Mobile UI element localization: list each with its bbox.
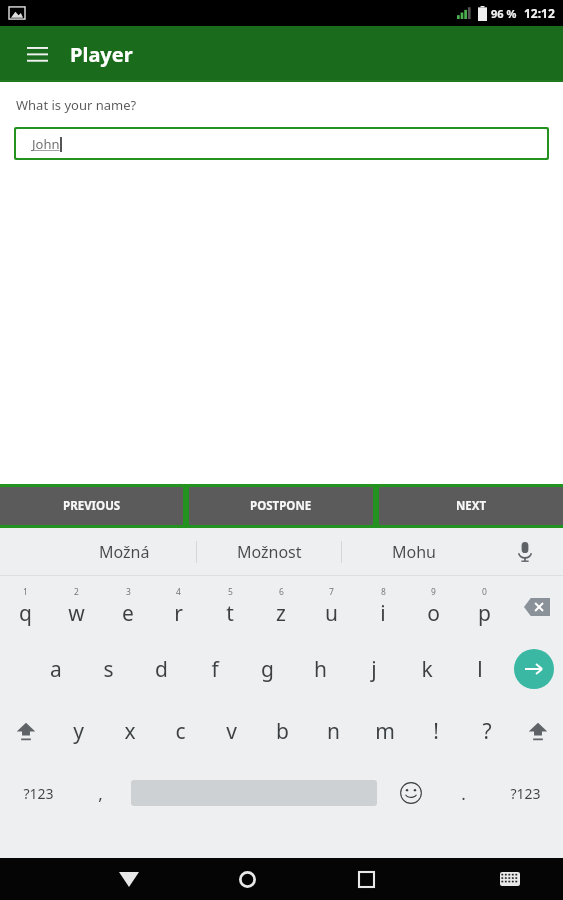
- staticText: p: [478, 599, 491, 628]
- staticText: o: [427, 599, 440, 628]
- button[interactable]: Voice input: [486, 528, 563, 576]
- button[interactable]: Možná: [52, 528, 196, 576]
- staticText: NEXT: [456, 498, 487, 514]
- staticText: Mohu: [392, 541, 436, 563]
- button[interactable]: 7: [306, 576, 357, 638]
- button[interactable]: 5: [204, 576, 255, 638]
- button[interactable]: ?: [461, 700, 512, 762]
- button[interactable]: 6: [255, 576, 306, 638]
- button[interactable]: Backspace: [510, 576, 563, 638]
- staticText: q: [19, 599, 32, 628]
- button[interactable]: Space: [124, 762, 383, 824]
- button[interactable]: Next field: [506, 638, 562, 700]
- staticText: y: [73, 717, 84, 746]
- button[interactable]: Mohu: [342, 528, 486, 576]
- staticText: PREVIOUS: [63, 498, 121, 514]
- staticText: 7: [329, 586, 334, 598]
- staticText: What is your name?: [16, 96, 137, 114]
- button[interactable]: 8: [357, 576, 408, 638]
- staticText: !: [433, 717, 439, 746]
- staticText: Možnost: [237, 541, 302, 563]
- button[interactable]: 2: [51, 576, 102, 638]
- staticText: 96 %: [491, 6, 517, 21]
- button[interactable]: 9: [408, 576, 459, 638]
- button[interactable]: Home: [209, 858, 286, 900]
- staticText: d: [155, 655, 168, 684]
- button[interactable]: x: [104, 700, 155, 762]
- button[interactable]: ,: [76, 762, 124, 824]
- button[interactable]: ?123: [487, 762, 563, 824]
- staticText: 12:12: [524, 5, 555, 21]
- button[interactable]: h: [294, 638, 347, 700]
- staticText: 5: [228, 586, 233, 598]
- button[interactable]: j: [347, 638, 400, 700]
- button[interactable]: John: [16, 129, 547, 158]
- staticText: g: [261, 655, 274, 684]
- staticText: b: [276, 717, 289, 746]
- button[interactable]: 4: [153, 576, 204, 638]
- staticText: 0: [482, 586, 487, 598]
- button[interactable]: 1: [0, 576, 51, 638]
- button[interactable]: k: [400, 638, 453, 700]
- button[interactable]: g: [241, 638, 294, 700]
- button[interactable]: c: [155, 700, 206, 762]
- staticText: j: [371, 655, 377, 684]
- staticText: 1: [23, 586, 28, 598]
- button[interactable]: Switch keyboard: [471, 858, 548, 900]
- staticText: x: [124, 717, 136, 746]
- staticText: v: [226, 717, 237, 746]
- staticText: l: [477, 655, 483, 684]
- staticText: h: [314, 655, 327, 684]
- button[interactable]: Recent apps: [328, 858, 405, 900]
- button[interactable]: s: [82, 638, 135, 700]
- staticText: John: [32, 135, 60, 153]
- staticText: 6: [279, 586, 284, 598]
- button[interactable]: Shift: [512, 700, 563, 762]
- button[interactable]: Možnost: [197, 528, 341, 576]
- button[interactable]: 3: [102, 576, 153, 638]
- button[interactable]: v: [206, 700, 257, 762]
- staticText: ?123: [510, 784, 541, 803]
- staticText: k: [421, 655, 433, 684]
- button[interactable]: m: [359, 700, 410, 762]
- button[interactable]: NEXT: [379, 487, 563, 525]
- staticText: s: [103, 655, 114, 684]
- button[interactable]: POSTPONE: [189, 487, 373, 525]
- staticText: 2: [74, 586, 79, 598]
- staticText: f: [211, 655, 219, 684]
- staticText: e: [122, 599, 134, 628]
- button[interactable]: PREVIOUS: [0, 487, 183, 525]
- button[interactable]: d: [135, 638, 188, 700]
- button[interactable]: .: [439, 762, 487, 824]
- staticText: n: [327, 717, 340, 746]
- staticText: ?123: [23, 784, 54, 803]
- staticText: 9: [431, 586, 436, 598]
- staticText: 8: [381, 586, 386, 598]
- staticText: Player: [70, 41, 133, 68]
- button[interactable]: y: [52, 700, 104, 762]
- button[interactable]: n: [308, 700, 359, 762]
- button[interactable]: b: [257, 700, 308, 762]
- staticText: i: [380, 599, 386, 628]
- staticText: r: [174, 599, 183, 628]
- button[interactable]: Back: [90, 858, 167, 900]
- staticText: w: [68, 599, 85, 628]
- staticText: Možná: [99, 541, 150, 563]
- button[interactable]: l: [453, 638, 506, 700]
- staticText: ,: [98, 782, 103, 805]
- button[interactable]: !: [410, 700, 461, 762]
- button[interactable]: Emoji: [383, 762, 439, 824]
- staticText: .: [461, 782, 466, 805]
- button[interactable]: Open navigation drawer: [20, 37, 54, 71]
- staticText: z: [276, 599, 286, 628]
- staticText: t: [226, 599, 234, 628]
- staticText: u: [325, 599, 338, 628]
- button[interactable]: 0: [459, 576, 510, 638]
- button[interactable]: f: [188, 638, 241, 700]
- button[interactable]: a: [29, 638, 82, 700]
- button[interactable]: Shift: [0, 700, 52, 762]
- staticText: c: [175, 717, 186, 746]
- staticText: POSTPONE: [250, 498, 312, 514]
- button[interactable]: ?123: [0, 762, 76, 824]
- staticText: m: [375, 717, 395, 746]
